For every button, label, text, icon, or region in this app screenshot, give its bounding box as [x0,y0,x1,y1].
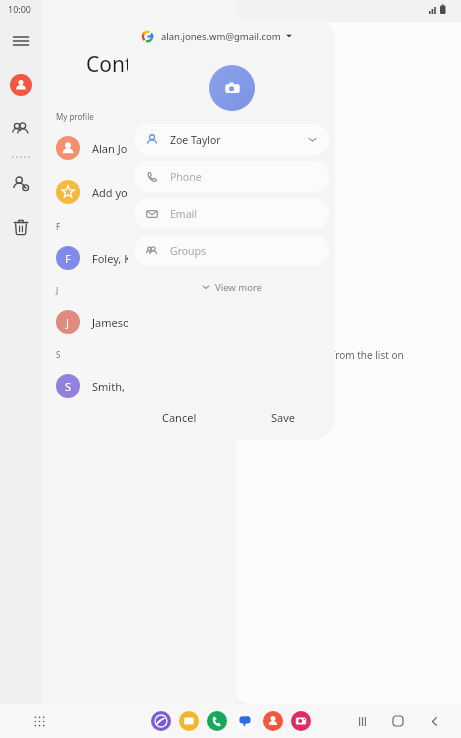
staticText: My profile [56,111,94,122]
button[interactable]: Add photo [209,65,255,111]
button[interactable]: Back [425,712,443,730]
staticText: 10:00 [8,3,32,15]
staticText: Zoe Taylor [170,133,221,147]
button[interactable]: Home [389,712,407,730]
button[interactable]: J [42,301,236,343]
button[interactable]: Alan Jones [42,127,236,169]
button[interactable]: Groups [6,114,36,144]
button[interactable]: Contacts [263,711,283,731]
staticText: Alan Jones [92,141,146,156]
staticText: Smith, Maria [92,379,158,394]
staticText: Save [271,410,296,425]
staticText: S [56,349,61,360]
staticText: Foley, Kevin [92,251,153,266]
button[interactable]: Email [134,198,329,229]
button[interactable]: S [42,365,236,407]
button[interactable]: Add your contacts [42,169,236,215]
button[interactable]: Contacts [6,70,36,100]
staticText: alan.jones.wm@gmail.com [161,30,281,43]
button[interactable]: Recents [353,712,371,730]
staticText: Email [170,207,197,221]
button[interactable]: F [42,237,236,279]
button[interactable]: Save [231,394,335,440]
button[interactable]: My Files [179,711,199,731]
button[interactable]: Messages [235,711,255,731]
staticText: Groups [170,244,207,258]
button[interactable]: View more [128,276,335,298]
button[interactable]: Groups [134,235,329,266]
staticText: F [65,251,71,266]
staticText: J [56,285,59,296]
staticText: View more [215,281,262,294]
staticText: Phone [170,170,202,184]
button[interactable]: Menu [6,26,36,56]
button[interactable]: Camera [291,711,311,731]
staticText: Add your contacts [92,185,186,200]
staticText: J [66,315,70,330]
button[interactable]: Phone [134,161,329,192]
button[interactable]: Trash [6,212,36,242]
staticText: S [65,379,72,394]
button[interactable]: All apps [28,710,50,732]
button[interactable]: alan.jones.wm@gmail.com [128,18,335,54]
button[interactable]: Zoe Taylor [134,124,329,155]
staticText: Jameson, Amy [92,315,166,330]
staticText: F [56,221,61,232]
staticText: Cancel [162,410,197,425]
staticText: Select a contact from the list on the le… [256,348,404,377]
staticText: Contacts [86,50,173,79]
button[interactable]: Cancel [128,394,231,440]
button[interactable]: Manage contacts [6,168,36,198]
button[interactable]: Phone [207,711,227,731]
button[interactable]: Internet [151,711,171,731]
